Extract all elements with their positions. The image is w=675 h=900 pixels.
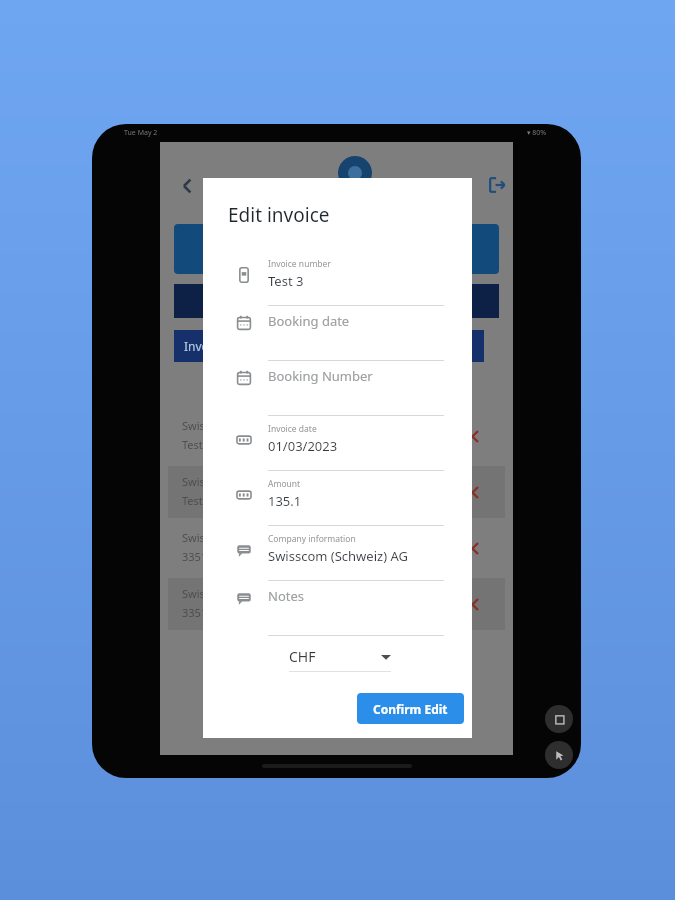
button[interactable]: Invoice number	[203, 254, 472, 309]
staticText: Edit invoice	[228, 202, 330, 228]
staticText: ▾ 80%	[527, 128, 547, 138]
staticText: Swisscom	[182, 530, 233, 545]
staticText: Test 3	[182, 437, 212, 452]
button[interactable]: Amount	[203, 474, 472, 529]
button[interactable]: Confirm Edit	[357, 693, 464, 724]
staticText: Company information	[268, 533, 356, 545]
button[interactable]: CHF	[289, 647, 391, 666]
staticText: 01/03/2023	[268, 437, 338, 455]
staticText: Invoices	[184, 338, 231, 354]
button[interactable]: Company information	[203, 529, 472, 584]
button[interactable]	[174, 224, 499, 274]
staticText: Amount	[268, 478, 301, 490]
staticText: Swisscom	[182, 474, 233, 489]
button[interactable]: Booking date	[203, 309, 472, 364]
staticText: Booking Number	[268, 367, 373, 385]
button[interactable]: Invoice date	[203, 419, 472, 474]
staticText: Invoice date	[268, 423, 317, 435]
button[interactable]: Back	[172, 170, 204, 202]
staticText: 135.1	[268, 492, 302, 510]
button[interactable]: Delete	[463, 539, 481, 557]
staticText: Test 3	[268, 272, 304, 290]
staticText: Tue May 2	[124, 128, 158, 138]
staticText: Swisscom	[182, 586, 233, 601]
button[interactable]: Swisscom	[168, 522, 505, 574]
staticText: Booking date	[268, 312, 350, 330]
staticText: 3351.25	[182, 549, 223, 564]
button[interactable]: Swisscom	[168, 578, 505, 630]
staticText: Swisscom	[182, 418, 233, 433]
staticText: Notes	[268, 587, 304, 605]
staticText: CHF	[289, 647, 316, 666]
button[interactable]: Logout	[482, 170, 512, 200]
staticText: 3351.25	[182, 605, 223, 620]
button[interactable]: Swisscom	[168, 410, 505, 462]
button[interactable]: Booking Number	[203, 364, 472, 419]
staticText: Swisscom (Schweiz) AG	[268, 547, 408, 565]
button[interactable]: Overlay action	[545, 705, 573, 733]
button[interactable]	[174, 284, 499, 318]
staticText: Confirm Edit	[373, 701, 448, 717]
button[interactable]: Notes	[203, 584, 472, 639]
button[interactable]: Delete	[463, 595, 481, 613]
button[interactable]: Swisscom	[168, 466, 505, 518]
staticText: Invoice number	[268, 258, 331, 270]
button[interactable]: Delete	[463, 483, 481, 501]
button[interactable]: Invoices	[174, 330, 484, 362]
button[interactable]: Delete	[463, 427, 481, 445]
staticText: Test 2	[182, 493, 212, 508]
button[interactable]: Overlay action	[545, 741, 573, 769]
